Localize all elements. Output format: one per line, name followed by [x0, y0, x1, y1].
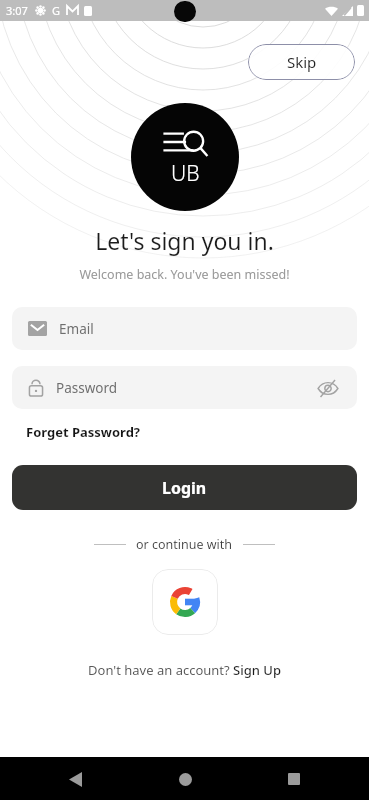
staticText: 3:07	[6, 3, 28, 18]
button[interactable]: Login	[12, 465, 357, 510]
staticText: or continue with	[136, 536, 233, 553]
staticText: Let's sign you in.	[95, 225, 274, 256]
staticText: Password	[56, 379, 315, 397]
button[interactable]: Recent apps	[281, 766, 307, 792]
staticText: Forget Password?	[26, 423, 141, 441]
staticText: Skip	[287, 52, 317, 72]
staticText: G	[52, 3, 61, 18]
button[interactable]: Don't have an account? Sign Up	[0, 661, 369, 679]
button[interactable]: Home	[172, 766, 198, 792]
button[interactable]: Back	[62, 766, 88, 792]
button[interactable]: Email	[12, 307, 357, 350]
staticText: Email	[59, 320, 94, 338]
button[interactable]: Continue with Google	[152, 569, 218, 635]
button[interactable]: Show password	[315, 375, 341, 401]
staticText: Don't have an account? Sign Up	[88, 661, 281, 679]
button[interactable]: Skip	[248, 44, 355, 80]
button[interactable]: Password	[12, 366, 357, 409]
staticText: Welcome back. You've been missed!	[79, 266, 290, 283]
staticText: UB	[171, 159, 200, 188]
button[interactable]: Forget Password?	[26, 423, 141, 441]
staticText: Login	[162, 477, 207, 499]
